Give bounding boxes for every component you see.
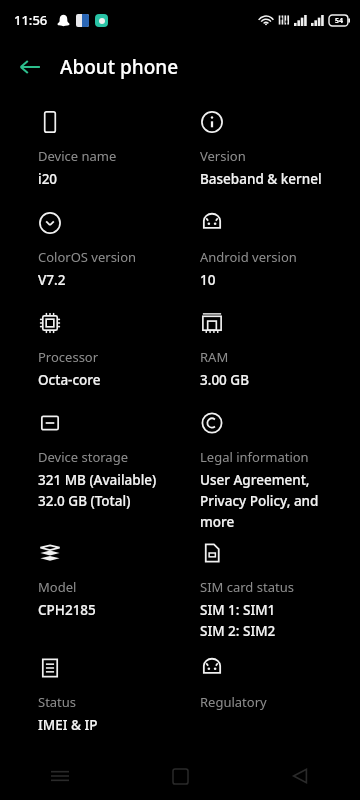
staticText: Device storage: [38, 448, 128, 466]
staticText: more: [200, 513, 235, 531]
staticText: Privacy Policy, and: [200, 492, 319, 510]
button[interactable]: Version: [200, 110, 360, 211]
staticText: Regulatory: [200, 693, 267, 711]
button[interactable]: Regulatory: [200, 656, 360, 752]
staticText: V7.2: [38, 271, 66, 289]
button[interactable]: Android version: [200, 211, 360, 311]
staticText: Processor: [38, 348, 99, 366]
staticText: 10: [200, 271, 216, 289]
button[interactable]: Status: [38, 656, 180, 752]
button[interactable]: Back: [8, 45, 52, 89]
staticText: CPH2185: [38, 601, 96, 619]
staticText: 32.0 GB (Total): [38, 492, 131, 510]
staticText: Legal information: [200, 448, 309, 466]
staticText: IMEI & IP: [38, 716, 98, 734]
staticText: Model: [38, 578, 77, 596]
staticText: ColorOS version: [38, 248, 137, 266]
staticText: Baseband & kernel: [200, 170, 322, 188]
staticText: i20: [38, 170, 58, 188]
staticText: 54: [335, 16, 344, 26]
staticText: Octa-core: [38, 371, 101, 389]
button[interactable]: Home: [120, 752, 240, 800]
button[interactable]: Back: [240, 752, 360, 800]
button[interactable]: ColorOS version: [38, 211, 180, 311]
button[interactable]: RAM: [200, 311, 360, 411]
staticText: User Agreement,: [200, 471, 310, 489]
staticText: SIM 2: SIM2: [200, 622, 276, 640]
button[interactable]: SIM card status: [200, 541, 360, 656]
staticText: Version: [200, 147, 246, 165]
staticText: SIM 1: SIM1: [200, 601, 276, 619]
button[interactable]: Recents: [0, 752, 120, 800]
staticText: RAM: [200, 348, 229, 366]
button[interactable]: Processor: [38, 311, 180, 411]
staticText: Status: [38, 693, 77, 711]
staticText: 11:56: [14, 11, 48, 29]
staticText: 3.00 GB: [200, 371, 249, 389]
button[interactable]: Device storage: [38, 411, 180, 541]
button[interactable]: Device name: [38, 110, 180, 211]
button[interactable]: Model: [38, 541, 180, 656]
staticText: About phone: [60, 54, 179, 80]
staticText: SIM card status: [200, 578, 294, 596]
staticText: 321 MB (Available): [38, 471, 157, 489]
staticText: Device name: [38, 147, 117, 165]
button[interactable]: Legal information: [200, 411, 360, 541]
staticText: Android version: [200, 248, 297, 266]
